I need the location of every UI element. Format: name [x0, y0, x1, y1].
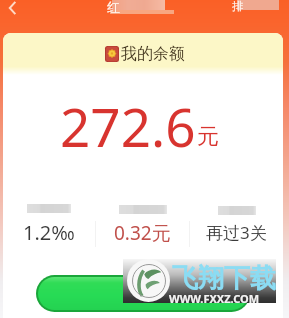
button[interactable]: 排行榜	[232, 9, 274, 23]
button[interactable]: 0.32元	[96, 205, 189, 246]
staticText: WWW.FXXZ.COM	[169, 291, 260, 306]
button[interactable]: 领取红包	[36, 275, 250, 312]
staticText: 红	[107, 0, 120, 15]
staticText: 再过3关	[206, 221, 267, 244]
staticText: 272.6	[60, 90, 196, 162]
staticText: 我的余额	[121, 44, 185, 64]
staticText: 元	[197, 123, 219, 151]
button[interactable]: Back	[3, 0, 25, 22]
staticText: 1.2‰	[23, 219, 75, 246]
staticText: 飞翔下载	[172, 262, 276, 295]
button[interactable]: 再过3关	[190, 206, 283, 244]
button[interactable]: 1.2‰	[3, 204, 95, 246]
staticText: 0.32元	[114, 220, 171, 246]
button[interactable]: 我的余额	[105, 44, 185, 64]
staticText: 排	[232, 0, 243, 13]
